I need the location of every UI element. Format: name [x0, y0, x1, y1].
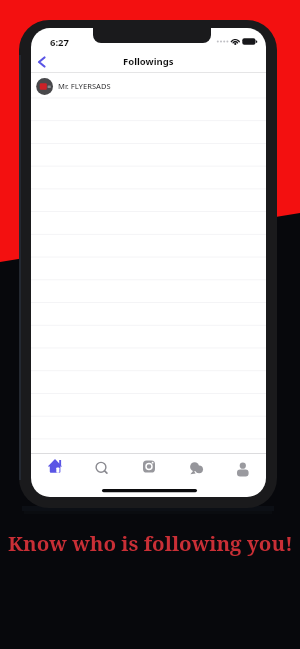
button[interactable] [31, 454, 78, 497]
button[interactable] [125, 454, 172, 497]
staticText: 6:27 [50, 36, 69, 49]
button[interactable] [172, 454, 219, 497]
staticText: Followings [123, 55, 174, 68]
button[interactable]: Mr. FLYERSADS [31, 73, 266, 98]
staticText: Mr. FLYERSADS [58, 81, 111, 91]
button[interactable] [219, 454, 266, 497]
staticText: Know who is following you! [8, 529, 293, 557]
button[interactable] [78, 454, 125, 497]
button[interactable] [34, 53, 52, 71]
